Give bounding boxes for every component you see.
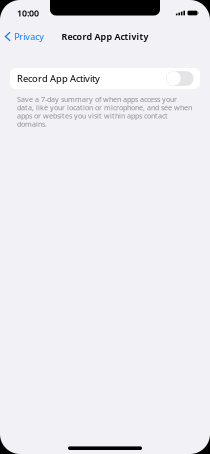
- staticText: 10:00: [17, 7, 39, 19]
- button[interactable]: Privacy: [0, 28, 48, 45]
- staticText: Save a 7-day summary of when apps access…: [17, 95, 192, 128]
- staticText: Record App Activity: [61, 31, 148, 42]
- staticText: Record App Activity: [17, 72, 100, 85]
- staticText: Privacy: [14, 31, 44, 42]
- button[interactable]: Record App Activity: [10, 68, 200, 89]
